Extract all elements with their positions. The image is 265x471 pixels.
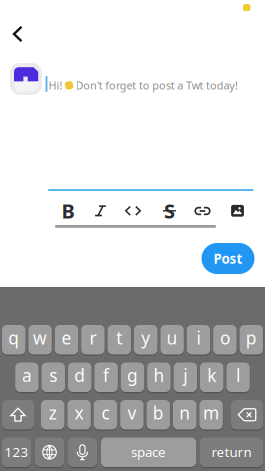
staticText: S xyxy=(164,197,175,224)
staticText: Hi! xyxy=(48,78,62,93)
staticText: return xyxy=(211,443,251,461)
button[interactable]: 123 xyxy=(2,437,31,467)
staticText: Don't forget to post a Twt today! xyxy=(75,78,238,93)
button[interactable]: n xyxy=(173,400,196,429)
staticText: d xyxy=(74,364,85,387)
staticText: e xyxy=(61,326,71,349)
button[interactable]: u xyxy=(160,325,184,354)
staticText: w xyxy=(33,326,47,349)
button[interactable]: a xyxy=(15,362,39,392)
button[interactable]: r xyxy=(81,325,105,354)
staticText: o xyxy=(220,326,230,349)
button[interactable]: d xyxy=(68,362,91,392)
button[interactable]: p xyxy=(240,325,263,354)
button[interactable]: Delete xyxy=(231,400,263,429)
button[interactable]: o xyxy=(213,325,237,354)
button[interactable]: Strikethrough xyxy=(156,199,182,223)
button[interactable]: Code xyxy=(120,199,146,223)
button[interactable]: space xyxy=(101,437,196,467)
staticText: m xyxy=(203,401,219,424)
staticText: t xyxy=(116,326,122,349)
button[interactable]: b xyxy=(147,400,170,429)
staticText: i xyxy=(196,326,200,349)
staticText: u xyxy=(167,326,178,349)
button[interactable]: q xyxy=(2,325,25,354)
button[interactable]: t xyxy=(108,325,131,354)
staticText: space xyxy=(131,443,166,461)
staticText: l xyxy=(236,364,240,387)
staticText: q xyxy=(8,326,19,349)
button[interactable]: c xyxy=(94,400,117,429)
button[interactable]: e xyxy=(55,325,78,354)
staticText: 123 xyxy=(4,443,28,461)
staticText: x xyxy=(75,401,84,424)
button[interactable]: Dictate xyxy=(68,437,97,467)
button[interactable]: k xyxy=(200,362,223,392)
button[interactable]: l xyxy=(226,362,250,392)
button[interactable]: x xyxy=(67,400,91,429)
button[interactable]: i xyxy=(187,325,210,354)
button[interactable]: Italic xyxy=(87,199,113,223)
button[interactable]: Back xyxy=(5,18,31,50)
staticText: g xyxy=(127,364,138,387)
staticText: r xyxy=(89,326,96,349)
staticText: y xyxy=(141,326,150,349)
staticText: j xyxy=(183,364,187,387)
staticText: a xyxy=(22,364,32,387)
button[interactable]: Attach image xyxy=(224,199,250,223)
staticText: p xyxy=(246,326,257,349)
staticText: B xyxy=(61,197,74,224)
staticText: v xyxy=(127,401,136,424)
staticText: Post xyxy=(213,250,242,267)
staticText: c xyxy=(101,401,109,424)
button[interactable]: h xyxy=(147,362,171,392)
staticText: b xyxy=(153,401,164,424)
button[interactable]: return xyxy=(200,437,263,467)
staticText: h xyxy=(153,364,164,387)
button[interactable]: f xyxy=(94,362,118,392)
staticText: s xyxy=(49,364,57,387)
button[interactable]: j xyxy=(174,362,197,392)
button[interactable]: Link xyxy=(189,199,215,223)
button[interactable]: g xyxy=(121,362,144,392)
button[interactable]: z xyxy=(41,400,64,429)
button[interactable]: v xyxy=(120,400,144,429)
button[interactable]: y xyxy=(134,325,157,354)
button[interactable]: Post xyxy=(201,243,254,274)
button[interactable]: m xyxy=(199,400,223,429)
staticText: f xyxy=(103,364,109,387)
staticText: n xyxy=(179,401,190,424)
button[interactable]: Next keyboard xyxy=(35,437,64,467)
button[interactable]: s xyxy=(42,362,65,392)
staticText: z xyxy=(49,401,57,424)
button[interactable]: w xyxy=(28,325,52,354)
button[interactable]: Bold xyxy=(55,199,81,223)
button[interactable]: Shift xyxy=(2,400,34,429)
staticText: k xyxy=(207,364,216,387)
